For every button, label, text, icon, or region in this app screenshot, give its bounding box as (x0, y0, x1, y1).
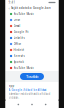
staticText: A Google-fiókod beállításai (8, 88, 46, 92)
staticText: Google Fit (14, 30, 29, 34)
staticText: Tipp (8, 84, 14, 87)
button[interactable]: Hirdeté (5, 47, 58, 53)
staticText: Gmail (14, 24, 21, 28)
staticText: Drive (14, 18, 21, 22)
staticText: bármikor módosíthatók a fiókod oldalán. (8, 92, 50, 99)
button[interactable]: Sportok (5, 59, 58, 65)
button[interactable]: YouTube Music (5, 65, 58, 71)
staticText: Saját adatok a Google-ban (11, 6, 51, 10)
button[interactable]: Drive (5, 17, 58, 23)
button[interactable]: Tovább (20, 73, 44, 80)
button[interactable]: YouTube Music (5, 11, 58, 17)
staticText: ‹ (8, 5, 9, 11)
button[interactable]: Keresés (5, 53, 58, 59)
staticText: Office (14, 42, 22, 46)
staticText: Tovább (26, 74, 38, 79)
staticText: YouTube Music (14, 66, 34, 70)
staticText: Sportok (14, 60, 24, 64)
staticText: Hirdeté (14, 48, 25, 52)
button[interactable]: Google Fit (5, 29, 58, 35)
button[interactable]: Gmail (5, 23, 58, 29)
staticText: 9:41 (8, 1, 15, 4)
button[interactable]: Linkelés (5, 35, 58, 41)
staticText: YouTube Music (14, 12, 34, 16)
button[interactable]: Office (5, 41, 58, 47)
staticText: Linkelés (14, 36, 25, 40)
staticText: Keresés (14, 54, 25, 58)
